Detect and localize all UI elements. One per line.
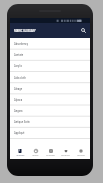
- button[interactable]: SETTINGS: [73, 145, 88, 159]
- staticText: Alpaca: [14, 98, 23, 102]
- button[interactable]: Acetate: [10, 49, 90, 60]
- button[interactable]: RECENT: [28, 145, 43, 159]
- button[interactable]: MY WORDS: [43, 145, 58, 159]
- staticText: Acetate: [14, 53, 24, 57]
- staticText: GLOSSARY: [16, 154, 25, 156]
- staticText: Acrylic: [14, 64, 23, 68]
- button[interactable]: Alnage: [10, 83, 90, 94]
- staticText: MY WORDS: [46, 154, 55, 156]
- button[interactable]: FAVORITES: [58, 145, 73, 159]
- staticText: FAVORITES: [61, 154, 70, 156]
- staticText: RECENT: [32, 154, 39, 156]
- button[interactable]: Search: [79, 26, 88, 35]
- button[interactable]: Appliqué: [10, 127, 90, 138]
- staticText: Aida cloth: [14, 76, 26, 80]
- staticText: Antique Satin: [14, 120, 30, 124]
- button[interactable]: Antique Satin: [10, 116, 90, 127]
- button[interactable]: Absorbency: [10, 38, 90, 49]
- button[interactable]: Acrylic: [10, 60, 90, 71]
- staticText: SETTINGS: [77, 154, 85, 156]
- button[interactable]: Aida cloth: [10, 72, 90, 83]
- staticText: Angora: [14, 109, 23, 113]
- button[interactable]: Alpaca: [10, 94, 90, 105]
- staticText: Alnage: [14, 87, 23, 91]
- staticText: Appliqué: [14, 131, 25, 135]
- button[interactable]: Angora: [10, 105, 90, 116]
- button[interactable]: GLOSSARY: [12, 145, 28, 159]
- staticText: FABRIC GLOSSARY: [14, 29, 36, 32]
- staticText: Absorbency: [14, 42, 28, 46]
